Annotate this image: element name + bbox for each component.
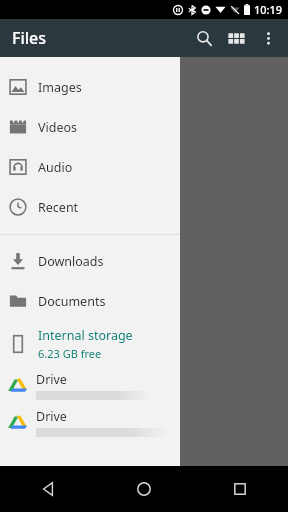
- button[interactable]: Home: [96, 466, 192, 512]
- button[interactable]: Images: [0, 67, 180, 107]
- staticText: 10:19: [254, 2, 283, 17]
- button[interactable]: Videos: [0, 107, 180, 147]
- button[interactable]: Downloads: [0, 241, 180, 281]
- staticText: Downloads: [38, 253, 104, 270]
- staticText: Documents: [38, 293, 106, 310]
- button[interactable]: Documents: [0, 281, 180, 321]
- button[interactable]: Recent apps: [192, 466, 288, 512]
- button[interactable]: Drive: [0, 367, 180, 404]
- button[interactable]: Drive: [0, 404, 180, 441]
- button[interactable]: More options: [252, 19, 284, 57]
- button[interactable]: Audio: [0, 147, 180, 187]
- button[interactable]: Back: [0, 466, 96, 512]
- button[interactable]: Internal storage: [0, 321, 180, 367]
- staticText: Images: [38, 79, 82, 96]
- staticText: Drive: [36, 371, 67, 388]
- button[interactable]: Search: [188, 19, 220, 57]
- staticText: Drive: [36, 408, 67, 425]
- staticText: Audio: [38, 159, 73, 176]
- staticText: Recent: [38, 199, 79, 216]
- staticText: Videos: [38, 119, 78, 136]
- staticText: Files: [12, 27, 47, 49]
- staticText: Internal storage: [38, 327, 133, 344]
- button[interactable]: Recent: [0, 187, 180, 227]
- staticText: 6.23 GB free: [38, 346, 102, 361]
- button[interactable]: Grid view: [220, 19, 252, 57]
